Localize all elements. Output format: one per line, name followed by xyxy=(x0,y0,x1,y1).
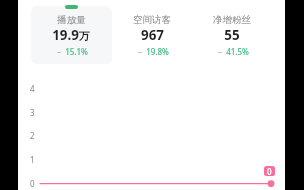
staticText: － 15.1% xyxy=(55,46,88,57)
other: Value 0 xyxy=(264,166,275,176)
staticText: 2 xyxy=(30,130,35,141)
staticText: 4 xyxy=(30,83,35,94)
staticText: 空间访客 xyxy=(133,14,171,26)
staticText: 净增粉丝 xyxy=(213,14,251,26)
staticText: － 41.5% xyxy=(216,46,249,57)
staticText: 0 xyxy=(267,166,272,176)
staticText: 3 xyxy=(30,107,35,118)
staticText: 55 xyxy=(224,26,240,44)
button[interactable]: 播放量 xyxy=(31,6,112,64)
staticText: 1 xyxy=(30,154,35,165)
staticText: － 19.8% xyxy=(136,46,169,57)
button[interactable]: 净增粉丝 xyxy=(192,6,272,64)
staticText: 播放量 xyxy=(57,14,86,26)
staticText: 967 xyxy=(141,26,164,44)
button[interactable]: 空间访客 xyxy=(112,6,192,64)
staticText: 19.9万 xyxy=(52,26,90,44)
staticText: 0 xyxy=(30,178,35,189)
